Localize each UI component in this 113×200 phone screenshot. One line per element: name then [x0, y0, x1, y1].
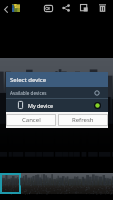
- staticText: Refresh: [72, 116, 94, 124]
- button[interactable]: [63, 173, 84, 194]
- button[interactable]: Delete: [93, 0, 111, 18]
- staticText: Select device: [10, 76, 47, 84]
- staticText: Available devices: [10, 90, 47, 96]
- button[interactable]: Selected photo: [0, 173, 21, 194]
- other: Selected photo: [0, 173, 21, 194]
- button[interactable]: [21, 173, 42, 194]
- staticText: My device: [28, 102, 54, 109]
- button[interactable]: [105, 173, 113, 194]
- button[interactable]: Refresh: [58, 114, 108, 126]
- button[interactable]: Cancel: [6, 114, 56, 126]
- button[interactable]: My device: [6, 99, 108, 111]
- button[interactable]: Edit: [75, 0, 93, 18]
- button[interactable]: [84, 173, 105, 194]
- button[interactable]: Share: [57, 0, 75, 18]
- button[interactable]: [42, 173, 63, 194]
- button[interactable]: Gallery: [11, 0, 20, 18]
- staticText: Cancel: [22, 116, 41, 124]
- button[interactable]: Screen mirroring: [39, 0, 57, 18]
- button[interactable]: Back: [0, 0, 11, 18]
